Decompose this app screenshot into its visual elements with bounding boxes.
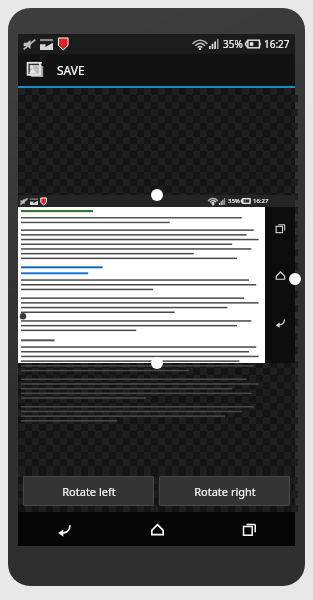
button[interactable]: Home bbox=[111, 512, 203, 546]
button[interactable]: Crop right handle bbox=[289, 273, 301, 285]
button[interactable]: Crop bottom handle bbox=[151, 357, 163, 369]
staticText: 35% bbox=[223, 37, 243, 51]
staticText: Rotate right bbox=[194, 484, 256, 499]
button[interactable]: Crop top handle bbox=[151, 189, 163, 201]
staticText: 35% bbox=[228, 197, 240, 205]
staticText: 16:27 bbox=[253, 197, 269, 205]
button[interactable]: Rotate left bbox=[23, 476, 154, 506]
button[interactable]: SAVE bbox=[18, 54, 295, 86]
button[interactable]: Recents bbox=[203, 512, 295, 546]
button[interactable]: Rotate right bbox=[159, 476, 290, 506]
staticText: Rotate left bbox=[62, 484, 116, 499]
staticText: SAVE bbox=[57, 62, 85, 78]
button[interactable]: Back bbox=[18, 512, 111, 546]
staticText: 16:27 bbox=[264, 37, 290, 51]
